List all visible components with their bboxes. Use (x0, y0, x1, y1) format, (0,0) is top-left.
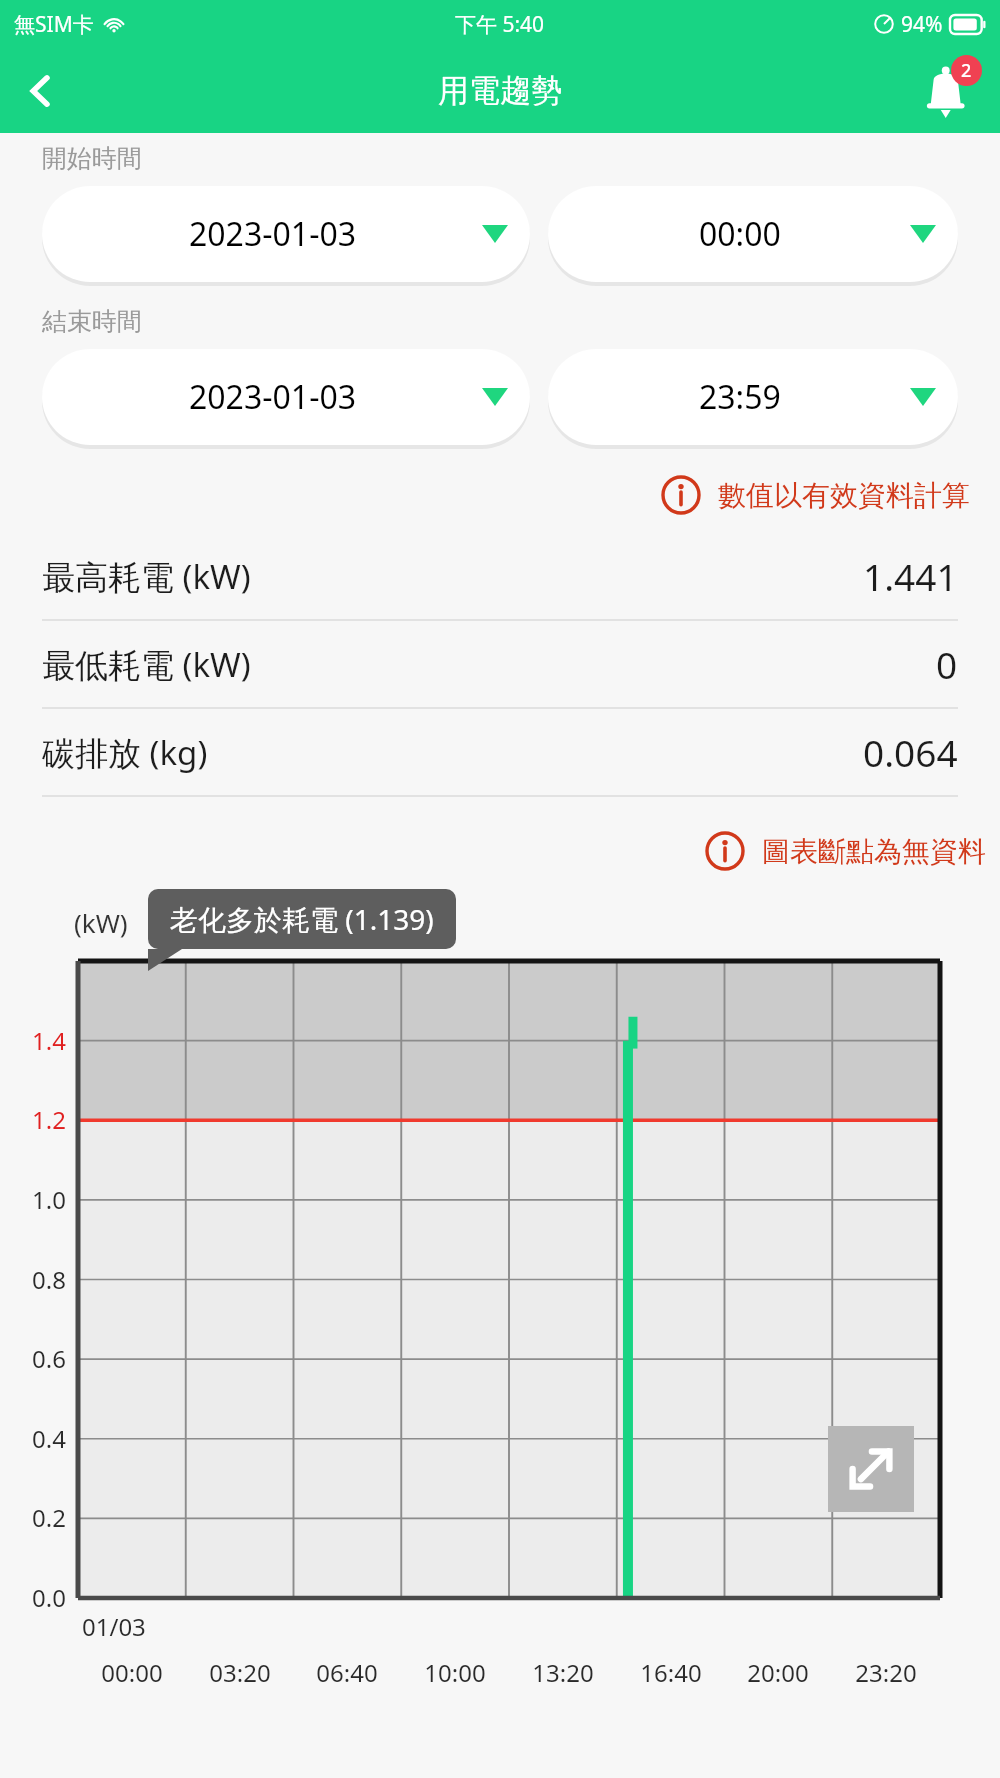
staticText: 0.4 (4, 1422, 66, 1455)
staticText: 0.064 (863, 727, 958, 777)
staticText: 23:59 (699, 375, 781, 419)
staticText: 0.2 (4, 1501, 66, 1534)
staticText: 16:40 (611, 1656, 731, 1689)
staticText: 0.6 (4, 1342, 66, 1375)
staticText: 1.441 (863, 551, 958, 601)
staticText: (kW) (74, 905, 128, 940)
staticText: 10:00 (395, 1656, 515, 1689)
staticText: 06:40 (287, 1656, 407, 1689)
staticText: 01/03 (82, 1610, 146, 1643)
staticText: 數值以有效資料計算 (718, 478, 970, 513)
staticText: 94% (901, 10, 943, 39)
staticText: 1.4 (4, 1024, 66, 1057)
staticText: 20:00 (718, 1656, 838, 1689)
staticText: 圖表斷點為無資料 (762, 834, 986, 869)
staticText: 結束時間 (42, 306, 142, 337)
staticText: 最低耗電 (kW) (42, 642, 251, 687)
staticText: 0.8 (4, 1263, 66, 1296)
staticText: 最高耗電 (kW) (42, 554, 251, 599)
staticText: 開始時間 (42, 143, 142, 174)
staticText: 03:20 (180, 1656, 300, 1689)
button[interactable]: Back (8, 58, 74, 124)
staticText: 無SIM卡 (14, 10, 94, 39)
staticText: 00:00 (699, 212, 781, 256)
staticText: 下午 5:40 (455, 10, 545, 39)
button[interactable]: Expand chart (828, 1426, 914, 1512)
staticText: 00:00 (72, 1656, 192, 1689)
staticText: 1.2 (4, 1103, 66, 1136)
staticText: 13:20 (503, 1656, 623, 1689)
staticText: 碳排放 (kg) (42, 730, 208, 775)
button[interactable]: Notifications (910, 53, 986, 129)
staticText: 2023-01-03 (189, 375, 357, 419)
staticText: 0 (936, 639, 958, 689)
staticText: 1.0 (4, 1183, 66, 1216)
button[interactable]: 23:59 (548, 349, 958, 445)
button[interactable]: 00:00 (548, 186, 958, 282)
button[interactable]: 2023-01-03 (42, 186, 530, 282)
staticText: 0.0 (4, 1581, 66, 1614)
staticText: 用電趨勢 (438, 71, 562, 110)
staticText: 2 (961, 58, 972, 83)
staticText: 2023-01-03 (189, 212, 357, 256)
staticText: 老化多於耗電 (1.139) (170, 900, 434, 938)
button[interactable]: 2023-01-03 (42, 349, 530, 445)
staticText: 23:20 (826, 1656, 946, 1689)
